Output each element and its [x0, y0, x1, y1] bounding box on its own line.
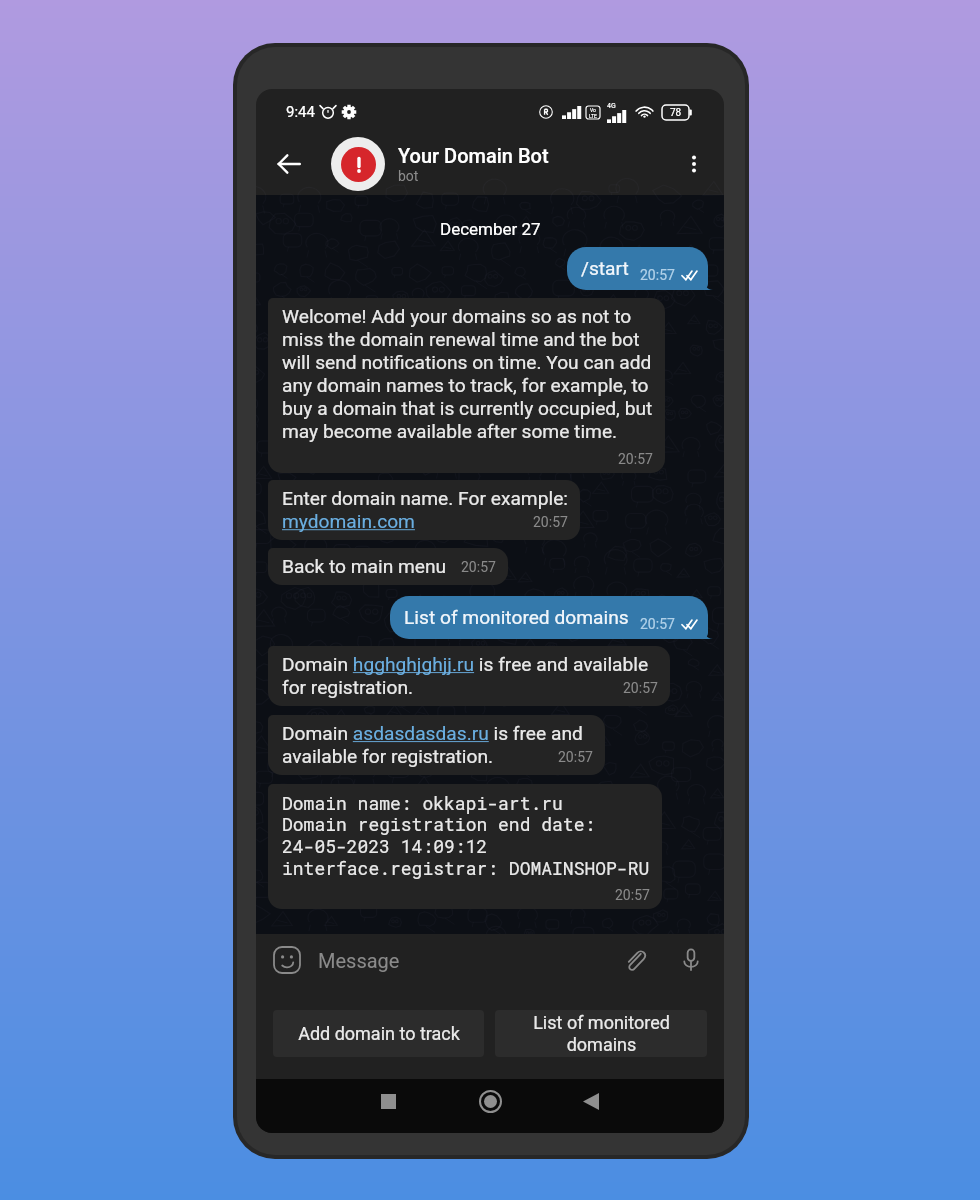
staticText: 78 [670, 107, 682, 119]
staticText: Domain hgghghjghjj.ru is free and availa… [282, 653, 649, 699]
staticText: Add domain to track [298, 1023, 460, 1044]
staticText: 20:57 [640, 267, 675, 283]
staticText: 20:57 [533, 514, 568, 530]
button[interactable]: Home [468, 1079, 512, 1123]
staticText: Back to main menu [282, 555, 447, 578]
staticText: 4G [607, 102, 616, 110]
staticText: 9:44 [286, 103, 315, 121]
staticText: Domain asdasdasdas.ru is free and availa… [282, 722, 583, 768]
staticText: 20:57 [615, 887, 650, 903]
staticText: LTE [589, 113, 597, 119]
staticText: Message [318, 949, 400, 972]
staticText: 20:57 [623, 680, 658, 696]
button[interactable]: Your Domain Bot [317, 132, 677, 195]
staticText: 20:57 [461, 559, 496, 575]
button[interactable]: Add domain to track [273, 1010, 484, 1057]
button[interactable]: Emoji [272, 945, 302, 975]
button[interactable]: More options [677, 147, 711, 181]
button[interactable]: Attach [620, 945, 650, 975]
staticText: 20:57 [558, 749, 593, 765]
staticText: Your Domain Bot [398, 144, 549, 167]
button[interactable]: List of monitored domains [495, 1010, 707, 1057]
button[interactable]: Welcome! Add your domains so as not to m… [268, 298, 665, 473]
button[interactable]: /start [567, 247, 708, 290]
staticText: Vo [590, 107, 596, 113]
button[interactable]: Enter domain name. For example: mydomain… [268, 480, 580, 540]
staticText: Welcome! Add your domains so as not to m… [282, 305, 653, 443]
staticText: 20:57 [640, 616, 675, 632]
button[interactable]: Domain hgghghjghjj.ru is free and availa… [268, 646, 670, 706]
button[interactable]: Recent apps [366, 1079, 410, 1123]
button[interactable]: Back [569, 1079, 613, 1123]
staticText: Enter domain name. For example: mydomain… [282, 487, 568, 533]
button[interactable]: Back to main menu [268, 548, 508, 585]
staticText: Domain name: okkapi-art.ru Domain regist… [282, 791, 650, 880]
button[interactable]: List of monitored domains [390, 596, 708, 639]
button[interactable]: Voice message [676, 945, 706, 975]
staticText: bot [398, 168, 419, 184]
staticText: List of monitored domains [533, 1012, 670, 1056]
staticText: 20:57 [618, 451, 653, 467]
button[interactable]: Back [270, 145, 308, 183]
button[interactable]: Domain asdasdasdas.ru is free and availa… [268, 715, 605, 775]
button[interactable]: Domain name: okkapi-art.ru Domain regist… [268, 784, 662, 909]
staticText: List of monitored domains [404, 606, 629, 629]
staticText: /start [581, 257, 629, 280]
staticText: December 27 [440, 219, 541, 239]
